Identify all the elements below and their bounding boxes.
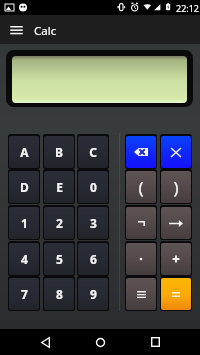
staticText: D <box>20 179 29 195</box>
staticText: 5 <box>56 251 63 267</box>
button[interactable]: 0 <box>77 169 109 204</box>
staticText: 8 <box>56 286 63 302</box>
button[interactable]: Implies <box>160 205 192 240</box>
staticText: ) <box>173 176 179 199</box>
button[interactable]: Close parenthesis <box>160 169 192 204</box>
button[interactable]: 6 <box>77 241 109 276</box>
staticText: 1 <box>21 215 28 231</box>
button[interactable]: 7 <box>8 276 40 311</box>
button[interactable] <box>160 134 192 169</box>
staticText: 4 <box>21 251 28 267</box>
button[interactable]: And <box>125 241 157 276</box>
button[interactable]: Back <box>32 330 58 354</box>
button[interactable]: Equals <box>160 276 192 311</box>
staticText: 7 <box>21 286 28 302</box>
button[interactable]: Or <box>160 241 192 276</box>
staticText: C <box>89 144 97 160</box>
staticText: B <box>55 144 63 160</box>
button[interactable]: C <box>77 134 109 169</box>
button[interactable]: 5 <box>43 241 75 276</box>
button[interactable]: 3 <box>77 205 109 240</box>
button[interactable]: E <box>43 169 75 204</box>
button[interactable]: 8 <box>43 276 75 311</box>
button[interactable]: Equivalent <box>125 276 157 311</box>
button[interactable]: B <box>43 134 75 169</box>
button[interactable]: 4 <box>8 241 40 276</box>
button[interactable]: Recents <box>142 330 168 354</box>
staticText: A <box>20 144 29 160</box>
button[interactable]: D <box>8 169 40 204</box>
staticText: 6 <box>90 251 97 267</box>
staticText: Calc <box>34 23 57 39</box>
button[interactable]: Home <box>87 330 113 354</box>
button[interactable]: 9 <box>77 276 109 311</box>
button[interactable]: Not <box>125 205 157 240</box>
staticText: 22:12 <box>176 2 200 14</box>
staticText: 9 <box>90 286 97 302</box>
button[interactable]: A <box>8 134 40 169</box>
button[interactable]: 2 <box>43 205 75 240</box>
button[interactable]: 1 <box>8 205 40 240</box>
staticText: 3 <box>90 215 97 231</box>
staticText: 0 <box>90 179 97 195</box>
staticText: 2 <box>56 215 63 231</box>
staticText: E <box>56 179 63 195</box>
button[interactable] <box>12 56 187 103</box>
staticText: ( <box>138 176 144 199</box>
button[interactable]: Open parenthesis <box>125 169 157 204</box>
button[interactable]: Menu <box>4 18 28 42</box>
button[interactable]: Backspace <box>125 134 157 169</box>
